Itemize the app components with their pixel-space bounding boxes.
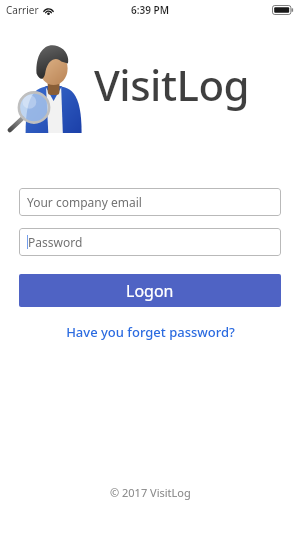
button[interactable]: Logon [19,274,281,307]
staticText: Your company email [27,194,142,210]
staticText: VisitLog [94,56,250,113]
button[interactable]: Password [19,228,281,256]
staticText: Carrier [6,3,39,17]
staticText: 6:39 PM [131,3,169,17]
staticText: Password [28,234,83,250]
staticText: Have you forget password? [66,323,235,341]
button[interactable]: Have you forget password? [0,323,300,341]
staticText: Logon [126,280,174,302]
other: VisitLog logo [10,34,90,134]
button[interactable]: Your company email [19,188,281,216]
staticText: © 2017 VisitLog [110,485,191,500]
